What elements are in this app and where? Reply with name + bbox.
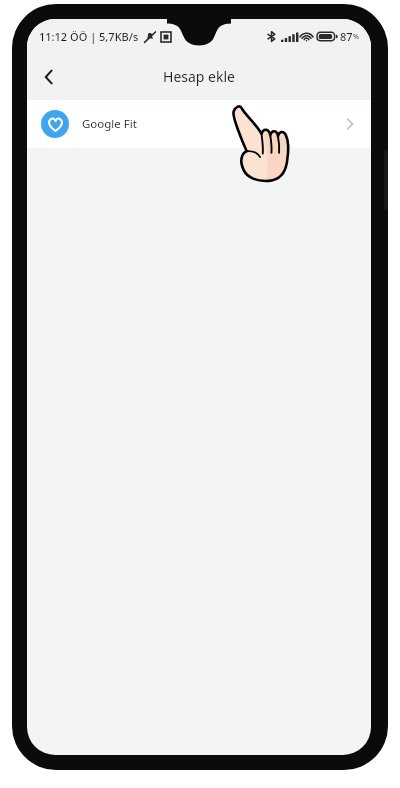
button[interactable]: Google Fit [27,100,371,148]
button[interactable]: Back [27,55,71,99]
staticText: Hesap ekle [163,67,235,86]
staticText: 87 [340,29,353,44]
staticText: Google Fit [82,116,137,132]
staticText: 11:12 ÖÖ | 5,7KB/s [39,29,139,44]
staticText: % [353,32,359,42]
